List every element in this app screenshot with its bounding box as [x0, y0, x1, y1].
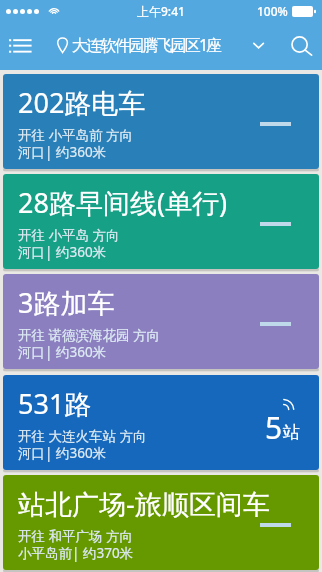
staticText: 202路电车 [18, 84, 146, 121]
button[interactable]: 3路加车 [3, 274, 319, 369]
button[interactable]: 站北广场-旅顺区间车 [3, 475, 319, 570]
staticText: 531路 [18, 385, 92, 422]
staticText: 上午9:41 [137, 3, 185, 19]
staticText: 开往 和平广场 方向 [18, 527, 134, 545]
staticText: 开往 小平岛 方向 [18, 226, 120, 244]
staticText: 大连软件园腾飞园区1座 [72, 34, 221, 56]
staticText: 开往 诺德滨海花园 方向 [18, 326, 161, 344]
staticText: 河口| 约360米 [18, 243, 107, 261]
staticText: 开往 小平岛前 方向 [18, 126, 134, 144]
staticText: 小平岛前| 约370米 [18, 544, 134, 562]
button[interactable]: Search [285, 30, 319, 66]
button[interactable]: 202路电车 [3, 74, 319, 169]
staticText: 28路早间线(单行) [18, 184, 228, 221]
staticText: 河口| 约360米 [18, 444, 107, 462]
staticText: 站北广场-旅顺区间车 [18, 485, 270, 522]
button[interactable]: 大连软件园腾飞园区1座 [55, 22, 267, 70]
staticText: 开往 大连火车站 方向 [18, 427, 147, 445]
staticText: 河口| 约360米 [18, 143, 107, 161]
button[interactable]: Menu [4, 26, 36, 66]
button[interactable]: 531路 [3, 375, 319, 470]
button[interactable]: 28路早间线(单行) [3, 174, 319, 269]
staticText: 3路加车 [18, 284, 115, 321]
staticText: 100% [257, 3, 288, 19]
staticText: 站 [283, 422, 300, 443]
staticText: 5 [265, 407, 283, 448]
staticText: 河口| 约360米 [18, 343, 107, 361]
